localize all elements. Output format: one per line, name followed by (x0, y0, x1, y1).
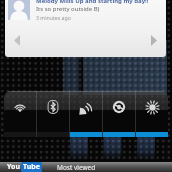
button[interactable]: GPS (70, 91, 102, 137)
staticText: Its so pretty outside B) (36, 5, 100, 13)
staticText: You (7, 162, 20, 172)
button[interactable]: Wi-Fi (4, 91, 36, 137)
button[interactable]: Previous notification (5, 28, 29, 52)
button[interactable]: Bluetooth (37, 91, 69, 137)
staticText: 3 minutes ago (36, 14, 71, 21)
button[interactable]: Auto sync (103, 91, 135, 137)
button[interactable]: Brightness (136, 91, 168, 137)
button[interactable]: You (0, 162, 172, 172)
staticText: Most viewed (57, 163, 96, 172)
staticText: Tube (23, 162, 40, 172)
staticText: Melody Mills Up and starting my day!! (36, 0, 149, 5)
button[interactable]: Melody Mills Up and starting my day!! (5, 0, 166, 57)
button[interactable]: Next notification (142, 28, 166, 52)
